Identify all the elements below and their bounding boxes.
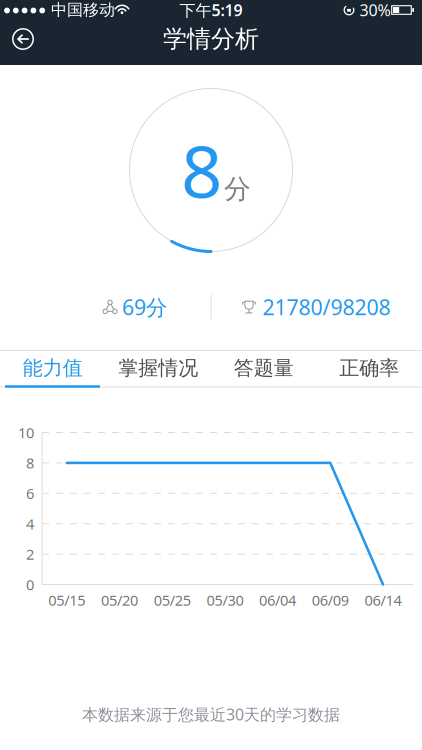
button[interactable]: 掌握情况: [105, 350, 211, 386]
button[interactable]: 能力值: [0, 350, 105, 386]
staticText: 能力值: [23, 356, 83, 380]
staticText: 8: [26, 453, 34, 473]
staticText: 本数据来源于您最近30天的学习数据: [82, 704, 340, 725]
button[interactable]: 正确率: [316, 350, 422, 386]
staticText: 06/04: [259, 590, 296, 610]
staticText: 10: [18, 423, 34, 442]
staticText: 下午5:19: [179, 0, 242, 21]
staticText: 06/09: [312, 590, 349, 610]
staticText: 06/14: [364, 590, 401, 610]
staticText: 05/15: [48, 590, 85, 610]
staticText: 掌握情况: [118, 356, 198, 380]
staticText: 答题量: [234, 356, 294, 380]
staticText: 69分: [122, 293, 167, 321]
staticText: 正确率: [339, 356, 399, 380]
button[interactable]: 答题量: [211, 350, 316, 386]
staticText: 中国移动: [51, 0, 115, 20]
button[interactable]: Back: [1, 19, 45, 59]
staticText: 05/20: [101, 590, 138, 610]
staticText: 21780/98208: [262, 293, 390, 321]
staticText: 0: [26, 575, 34, 594]
staticText: 05/30: [206, 590, 243, 610]
staticText: 学情分析: [163, 24, 259, 54]
staticText: 4: [26, 514, 34, 533]
staticText: 8: [181, 122, 222, 218]
staticText: 6: [26, 484, 34, 503]
staticText: 2: [26, 544, 34, 564]
staticText: 分: [224, 173, 251, 205]
staticText: 30%: [359, 0, 390, 21]
staticText: 05/25: [154, 590, 191, 610]
